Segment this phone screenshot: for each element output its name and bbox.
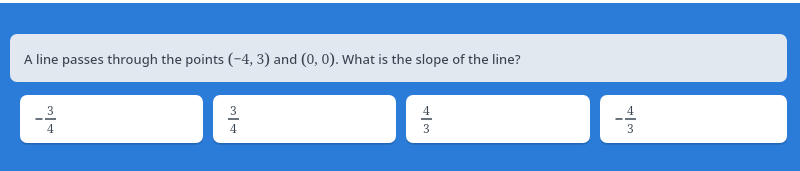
staticText: 4 — [423, 102, 430, 118]
button[interactable]: 4 — [406, 95, 590, 143]
button[interactable]: 4 — [600, 95, 787, 143]
staticText: 4 — [47, 120, 54, 136]
staticText: 3 — [423, 120, 430, 136]
staticText: 3 — [47, 102, 54, 118]
staticText: 4 — [230, 120, 237, 136]
staticText: 4 — [627, 102, 634, 118]
button[interactable]: 3 — [20, 95, 203, 143]
button[interactable]: 3 — [213, 95, 396, 143]
staticText: 3 — [230, 102, 237, 118]
staticText: A line passes through the points (−4, 3)… — [24, 47, 521, 70]
staticText: 3 — [627, 120, 634, 136]
